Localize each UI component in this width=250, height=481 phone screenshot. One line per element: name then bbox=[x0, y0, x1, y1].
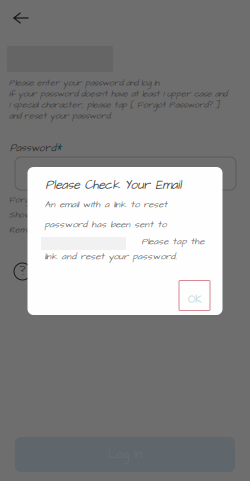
staticText: Please Check Your Email bbox=[45, 177, 181, 194]
staticText: Show Password bbox=[9, 209, 73, 221]
staticText: link and reset your password. bbox=[44, 250, 176, 263]
staticText: * bbox=[57, 141, 62, 156]
button[interactable]: Back bbox=[5, 4, 37, 32]
staticText: 1 special character, please tap [ Forgot… bbox=[9, 99, 220, 111]
staticText: An email with a link to reset bbox=[44, 198, 167, 211]
staticText: Remember Me bbox=[9, 224, 69, 236]
staticText: Please tap the bbox=[141, 235, 204, 248]
staticText: Password bbox=[10, 141, 56, 155]
staticText: If your password doesn't have at least 1… bbox=[9, 88, 227, 100]
staticText: Please enter your password and log in. bbox=[9, 77, 160, 89]
staticText: Log In bbox=[108, 446, 142, 463]
staticText: password has been sent to bbox=[44, 218, 166, 231]
staticText: Forgot Password? bbox=[9, 194, 84, 206]
staticText: ? bbox=[19, 263, 25, 280]
staticText: and reset your password. bbox=[9, 110, 111, 122]
staticText: OK bbox=[188, 292, 201, 307]
button[interactable]: OK bbox=[179, 280, 210, 310]
